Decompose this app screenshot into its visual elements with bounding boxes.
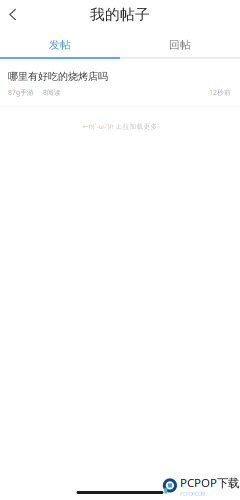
staticText: 回帖 (169, 38, 191, 52)
staticText: 8阅读 (43, 88, 61, 97)
staticText: 12秒前 (209, 88, 231, 97)
button[interactable]: 发帖 (0, 34, 120, 56)
button[interactable]: 回帖 (120, 34, 240, 56)
staticText: 我的帖子 (90, 5, 150, 24)
staticText: 87g手游 (8, 88, 34, 97)
staticText: 发帖 (49, 38, 71, 52)
staticText: ←n(´-ω-`)n 上拉加载更多 (82, 122, 157, 131)
staticText: 哪里有好吃的烧烤店吗 (8, 70, 108, 83)
staticText: PCPOP.COM (180, 491, 205, 497)
staticText: PCPOP下载 (180, 475, 239, 490)
button[interactable]: Back (0, 1, 26, 27)
button[interactable]: 哪里有好吃的烧烤店吗 (0, 59, 240, 107)
